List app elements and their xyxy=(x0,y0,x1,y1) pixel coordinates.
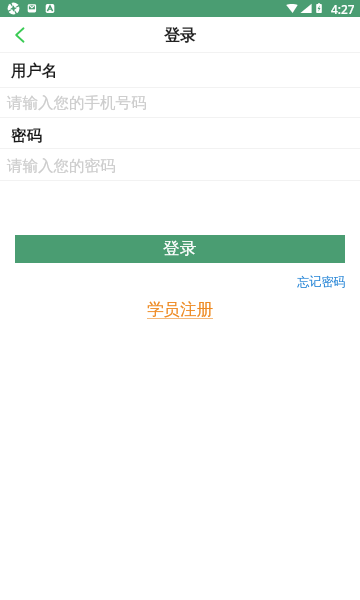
button[interactable]: 登录 xyxy=(15,235,345,263)
staticText: 4:27 xyxy=(331,1,355,17)
staticText: 忘记密码 xyxy=(297,274,346,288)
button[interactable]: Back xyxy=(4,19,36,51)
button[interactable]: 忘记密码 xyxy=(297,274,346,288)
staticText: 密码 xyxy=(11,126,42,145)
button[interactable]: 请输入您的密码 xyxy=(0,148,360,180)
staticText: 请输入您的密码 xyxy=(7,156,116,176)
staticText: 登录 xyxy=(164,26,196,46)
button[interactable]: 请输入您的手机号码 xyxy=(0,87,360,117)
staticText: 用户名 xyxy=(11,61,57,80)
staticText: 请输入您的手机号码 xyxy=(7,93,147,113)
staticText: 登录 xyxy=(163,238,197,259)
staticText: 学员注册 xyxy=(147,299,213,319)
button[interactable]: 学员注册 xyxy=(147,299,213,319)
